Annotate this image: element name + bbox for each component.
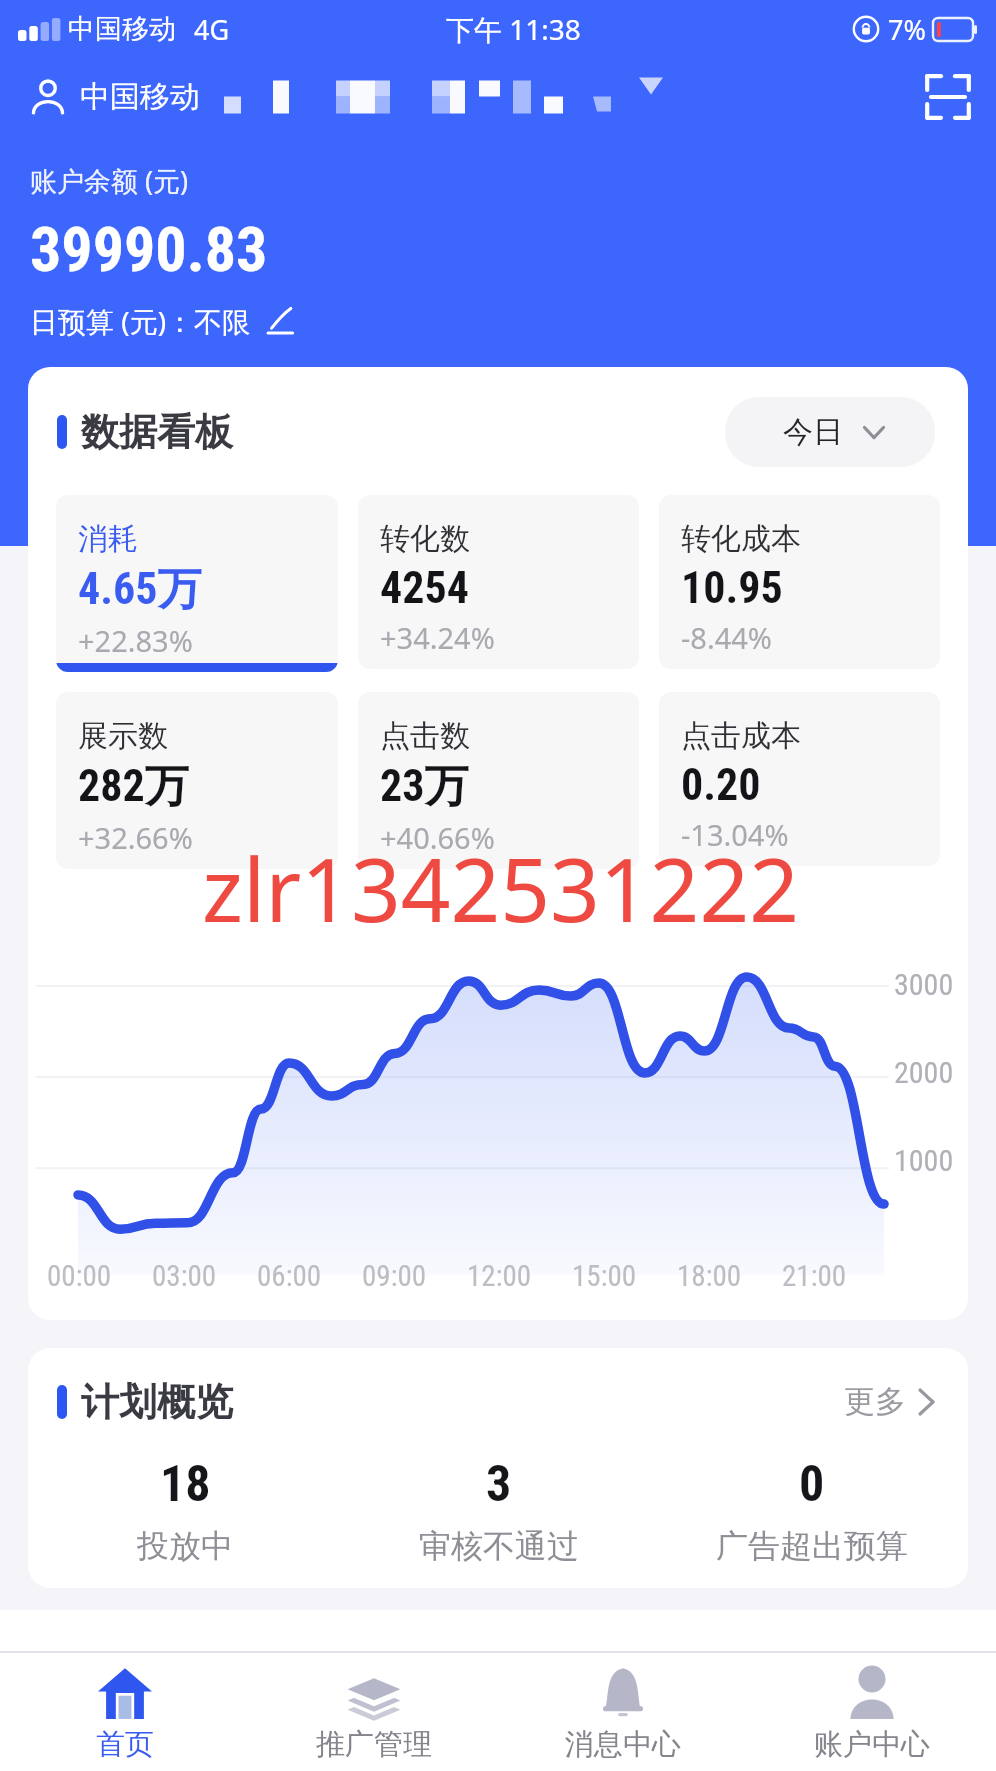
staticText: 中国移动 bbox=[80, 78, 200, 116]
staticText: 21:00 bbox=[782, 1259, 847, 1293]
staticText: zlr1342531222 bbox=[202, 829, 799, 947]
staticText: +34.24% bbox=[380, 618, 495, 657]
staticText: 中国移动 bbox=[68, 12, 176, 46]
staticText: 3 bbox=[486, 1455, 512, 1514]
button[interactable]: Scan code bbox=[920, 69, 976, 125]
button[interactable]: 点击成本 bbox=[659, 692, 940, 866]
staticText: 10.95 bbox=[681, 562, 783, 614]
staticText: +40.66% bbox=[380, 818, 495, 857]
staticText: 00:00 bbox=[47, 1259, 112, 1293]
staticText: 账户余额 (元) bbox=[30, 162, 189, 199]
staticText: 推广管理 bbox=[316, 1726, 432, 1763]
button[interactable]: 消息中心 bbox=[498, 1653, 747, 1771]
staticText: 下午 11:38 bbox=[446, 10, 581, 48]
button[interactable]: Edit daily budget bbox=[261, 302, 299, 340]
staticText: 转化数 bbox=[380, 520, 470, 558]
staticText: 06:00 bbox=[257, 1259, 322, 1293]
button[interactable]: 展示数 bbox=[56, 692, 338, 869]
staticText: +22.83% bbox=[78, 621, 193, 660]
staticText: 39990.83 bbox=[30, 213, 268, 286]
staticText: 4254 bbox=[380, 562, 469, 614]
button[interactable]: 推广管理 bbox=[249, 1653, 498, 1771]
staticText: 点击数 bbox=[380, 717, 470, 755]
button[interactable]: 18 bbox=[28, 1455, 342, 1566]
staticText: 投放中 bbox=[137, 1526, 233, 1566]
staticText: 09:00 bbox=[362, 1259, 427, 1293]
staticText: 0 bbox=[799, 1455, 825, 1514]
staticText: 3000 bbox=[894, 967, 954, 1002]
staticText: 7% bbox=[888, 11, 926, 48]
staticText: 计划概览 bbox=[81, 1378, 233, 1426]
staticText: 4G bbox=[194, 11, 230, 48]
staticText: 282万 bbox=[78, 759, 189, 814]
button[interactable]: 更多 bbox=[838, 1376, 935, 1427]
staticText: 15:00 bbox=[572, 1259, 637, 1293]
button[interactable]: 今日 bbox=[725, 397, 935, 467]
staticText: 账户中心 bbox=[814, 1726, 930, 1763]
staticText: 今日 bbox=[783, 413, 843, 451]
staticText: 审核不通过 bbox=[419, 1526, 579, 1566]
button[interactable]: 账户中心 bbox=[747, 1653, 996, 1771]
staticText: 18 bbox=[160, 1455, 211, 1514]
button[interactable]: 转化数 bbox=[358, 495, 639, 669]
staticText: 0.20 bbox=[681, 759, 761, 811]
staticText: 1000 bbox=[894, 1143, 954, 1178]
staticText: +32.66% bbox=[78, 818, 193, 857]
staticText: 消息中心 bbox=[565, 1726, 681, 1763]
staticText: 数据看板 bbox=[81, 408, 233, 456]
button[interactable]: 消耗 bbox=[56, 495, 338, 672]
staticText: 23万 bbox=[380, 759, 469, 814]
button[interactable]: 首页 bbox=[0, 1653, 249, 1771]
staticText: 18:00 bbox=[677, 1259, 742, 1293]
button[interactable]: 点击数 bbox=[358, 692, 639, 869]
staticText: 4.65万 bbox=[78, 562, 202, 617]
staticText: 12:00 bbox=[467, 1259, 532, 1293]
staticText: 2000 bbox=[894, 1055, 954, 1090]
staticText: 展示数 bbox=[78, 717, 168, 755]
button[interactable]: 0 bbox=[655, 1455, 968, 1566]
staticText: 转化成本 bbox=[681, 520, 801, 558]
staticText: 日预算 (元)：不限 bbox=[30, 302, 251, 340]
button[interactable]: 转化成本 bbox=[659, 495, 940, 669]
staticText: 广告超出预算 bbox=[716, 1526, 908, 1566]
staticText: 首页 bbox=[96, 1726, 154, 1763]
staticText: 点击成本 bbox=[681, 717, 801, 755]
staticText: 更多 bbox=[844, 1382, 906, 1421]
staticText: -8.44% bbox=[681, 618, 772, 657]
button[interactable]: 3 bbox=[342, 1455, 655, 1566]
staticText: 消耗 bbox=[78, 520, 138, 558]
staticText: 03:00 bbox=[152, 1259, 217, 1293]
staticText: -13.04% bbox=[681, 815, 789, 854]
